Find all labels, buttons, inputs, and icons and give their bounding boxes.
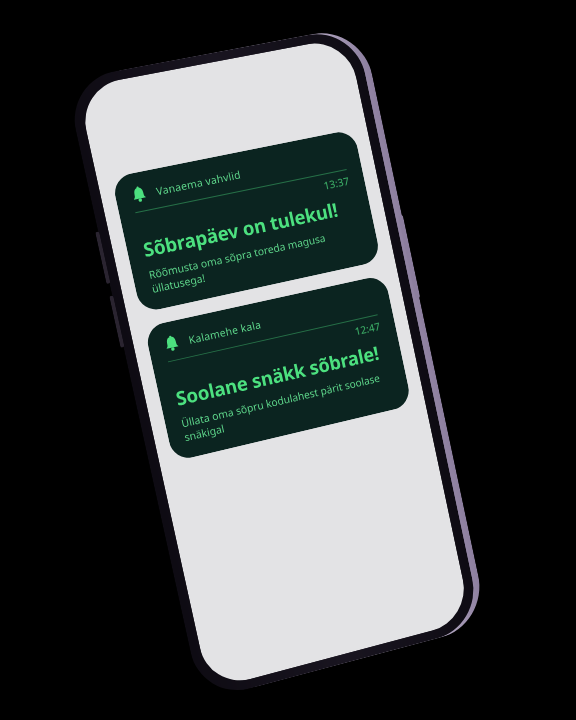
button[interactable]: Notification <box>111 129 382 313</box>
staticText: 12:47 <box>169 319 381 380</box>
staticText: 13:37 <box>136 174 350 231</box>
staticText: Soolane snäkk sõbrale! <box>173 340 381 412</box>
other: Notification <box>130 185 148 203</box>
other: Notification <box>163 334 181 352</box>
staticText: Sõbrapäev on tulekul! <box>141 197 340 263</box>
staticText: Vanaema vahvlid <box>155 167 242 198</box>
button[interactable]: Notification <box>144 274 412 462</box>
staticText: Kalamehe kala <box>187 317 263 347</box>
staticText: Rõõmusta oma sõpra toreda magusa üllatus… <box>147 223 364 296</box>
staticText: Üllata oma sõpru kodulahest pärit soolas… <box>180 368 395 444</box>
